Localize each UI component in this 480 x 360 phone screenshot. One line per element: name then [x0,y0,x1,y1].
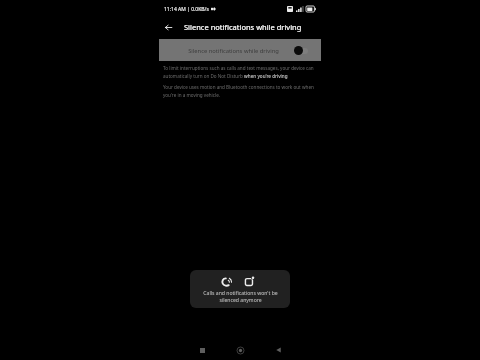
staticText: Calls and notifications won't be silence… [203,290,278,304]
staticText: To limit interruptions such as calls and… [163,65,318,79]
button[interactable]: Home [229,341,251,359]
button[interactable]: Recents [191,341,213,359]
button[interactable]: Back [267,341,289,359]
button[interactable]: Back [159,18,177,36]
staticText: Silence notifications while driving [176,47,291,55]
staticText: Your device uses motion and Bluetooth co… [163,84,318,98]
button[interactable]: Silence notifications while driving [159,39,321,61]
staticText: Silence notifications while driving [184,22,302,32]
staticText: 11:14 AM | 0.0KB/s [164,6,209,13]
